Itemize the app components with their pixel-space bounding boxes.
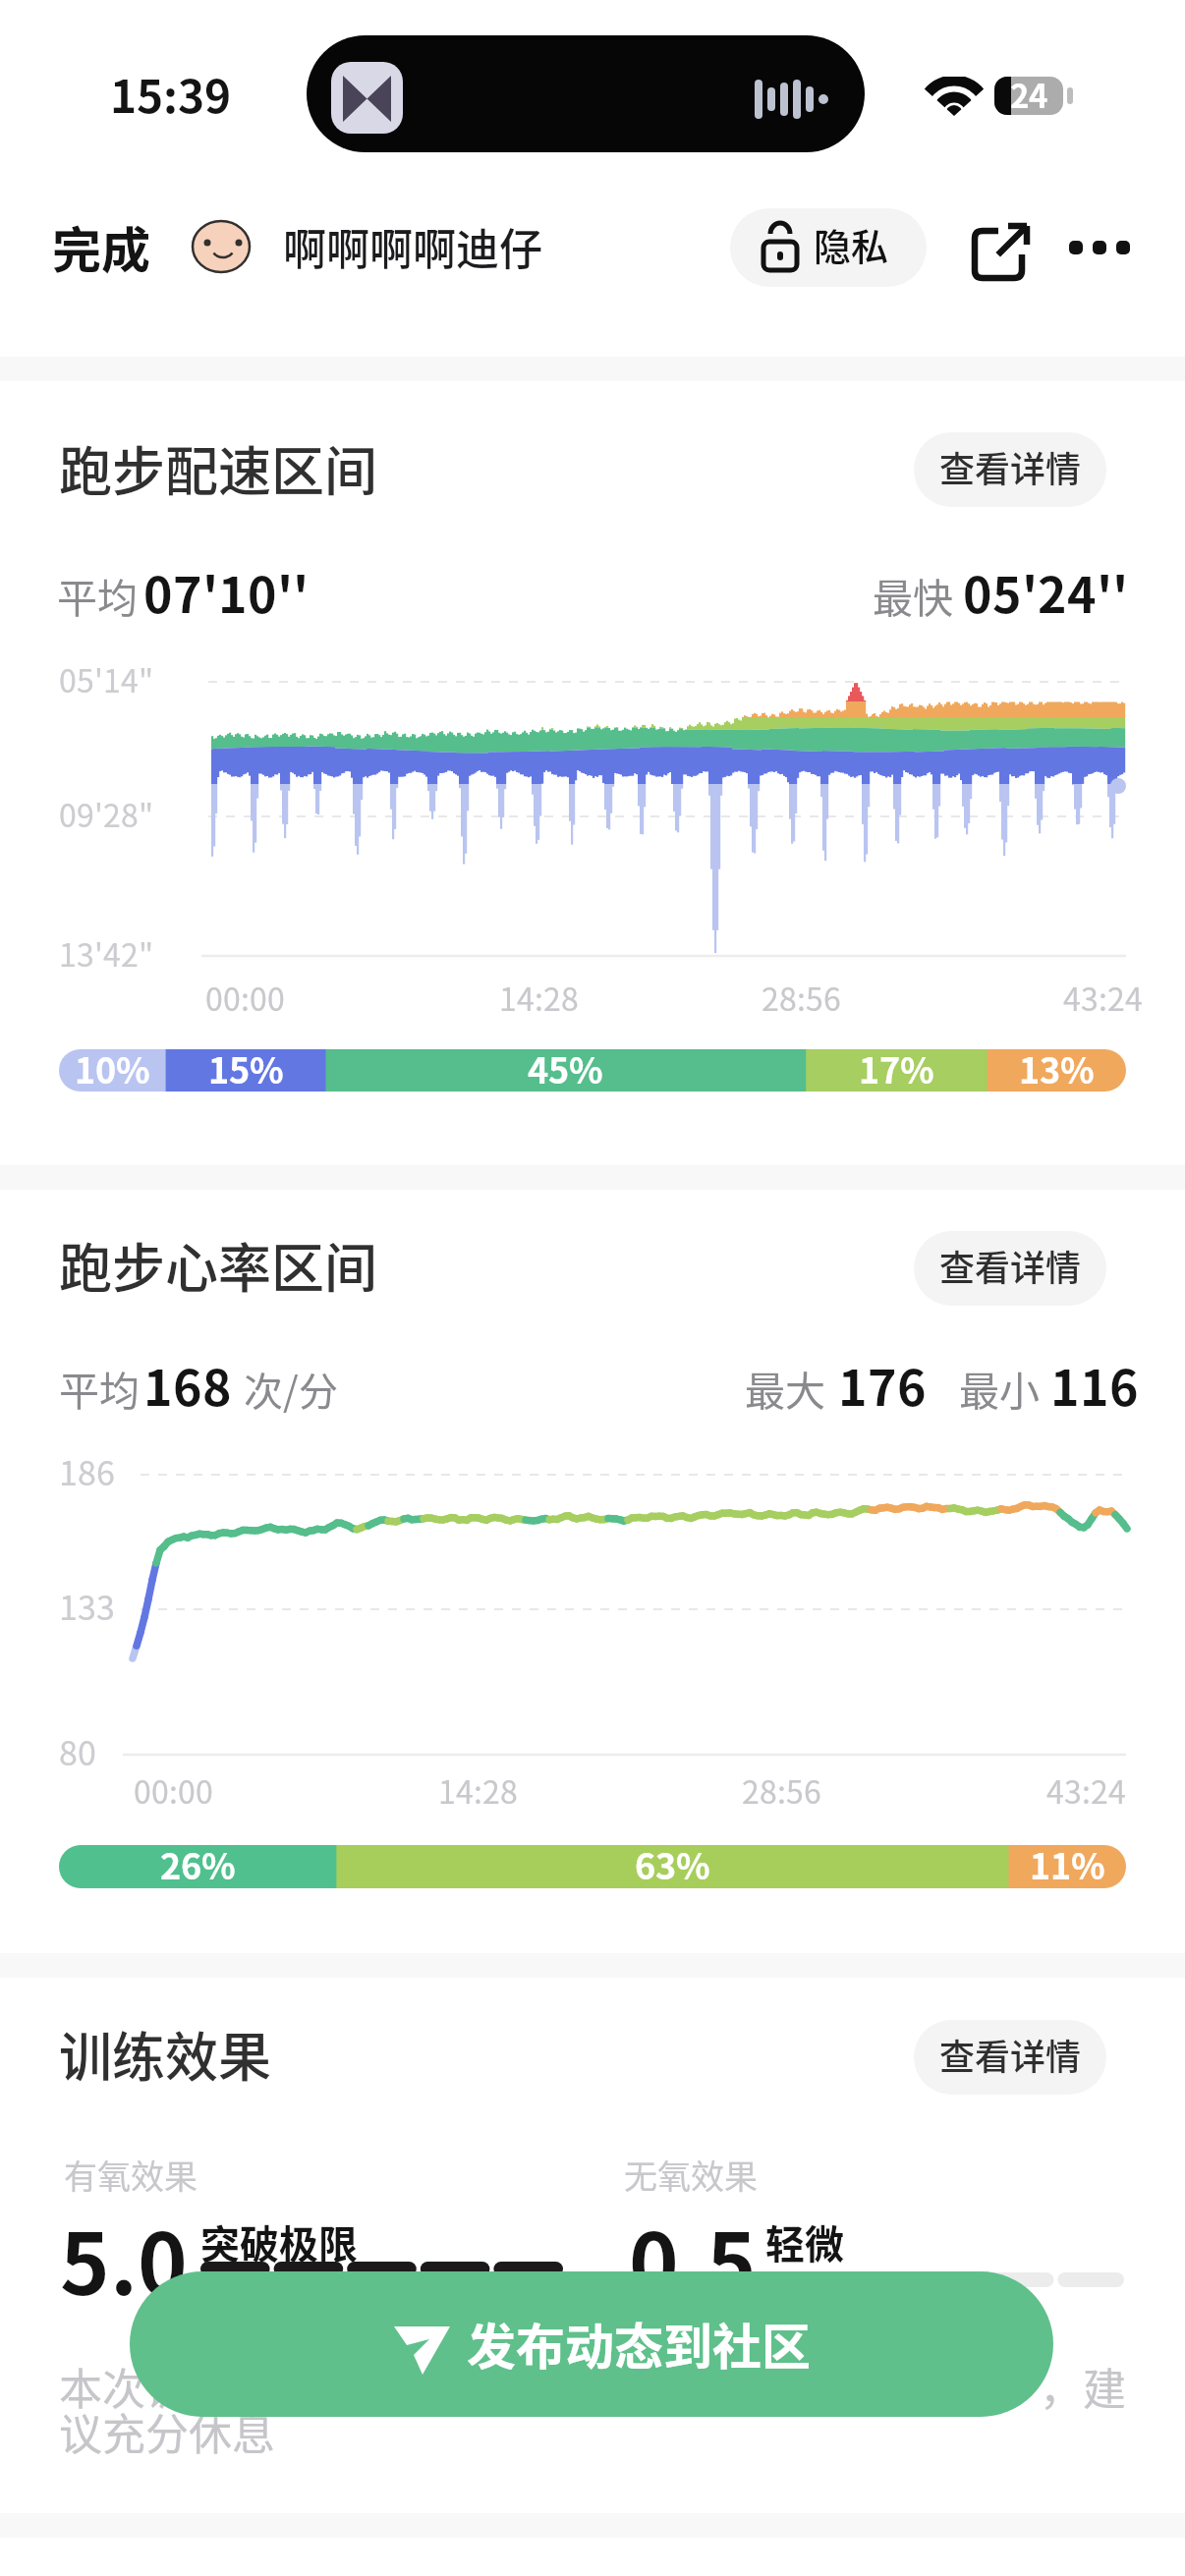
button[interactable] xyxy=(1061,218,1136,277)
button[interactable] xyxy=(967,221,1028,282)
button[interactable] xyxy=(914,2020,1106,2095)
button[interactable] xyxy=(130,2271,1053,2417)
button[interactable] xyxy=(914,432,1106,507)
button[interactable] xyxy=(730,208,927,287)
button[interactable] xyxy=(914,1231,1106,1306)
